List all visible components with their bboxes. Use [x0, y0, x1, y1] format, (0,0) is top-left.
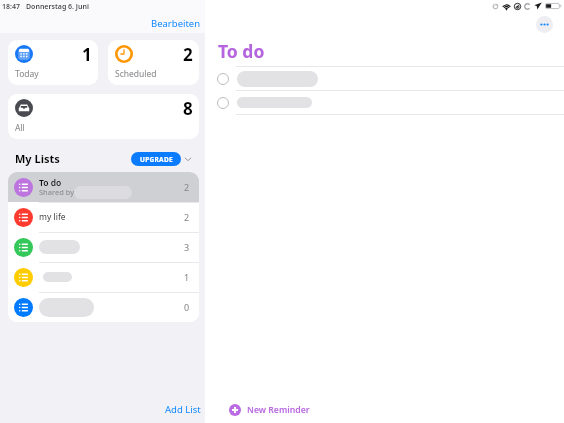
staticText: 18:47 — [2, 2, 20, 12]
staticText: My Lists — [15, 151, 60, 166]
button[interactable]: Scheduled — [108, 40, 199, 85]
button[interactable]: UPGRADE — [131, 152, 181, 166]
button[interactable]: More options — [536, 16, 553, 33]
staticText: 1 — [184, 271, 190, 283]
staticText: To do — [39, 177, 62, 189]
staticText: All — [15, 122, 25, 134]
button[interactable]: Add List — [165, 403, 201, 416]
staticText: 0 — [184, 301, 190, 313]
staticText: 8 — [183, 97, 193, 120]
button[interactable]: 3 — [8, 232, 199, 262]
button[interactable]: New Reminder — [229, 404, 310, 416]
staticText: Shared by — [39, 187, 76, 197]
button[interactable]: my life — [8, 202, 199, 232]
staticText: 1 — [82, 43, 92, 66]
staticText: Scheduled — [115, 68, 157, 80]
button[interactable]: 0 — [8, 292, 199, 322]
staticText: 2 — [184, 211, 190, 223]
staticText: 2 — [184, 181, 190, 193]
staticText: Donnerstag 6. Juni — [26, 2, 89, 12]
staticText: 2 — [183, 43, 193, 66]
button[interactable]: Collapse My Lists — [183, 154, 193, 164]
staticText: New Reminder — [247, 404, 310, 416]
button[interactable]: Mark complete — [217, 73, 229, 85]
staticText: my life — [39, 211, 66, 223]
button[interactable]: 1 — [8, 262, 199, 292]
button[interactable]: All — [8, 94, 199, 139]
button[interactable]: Mark complete — [217, 97, 229, 109]
button[interactable]: To do — [8, 172, 199, 202]
staticText: UPGRADE — [140, 155, 173, 164]
button[interactable]: Today — [8, 40, 98, 85]
button[interactable]: Bearbeiten — [151, 17, 201, 30]
staticText: Today — [15, 68, 39, 80]
staticText: To do — [218, 39, 265, 63]
staticText: 3 — [184, 241, 190, 253]
